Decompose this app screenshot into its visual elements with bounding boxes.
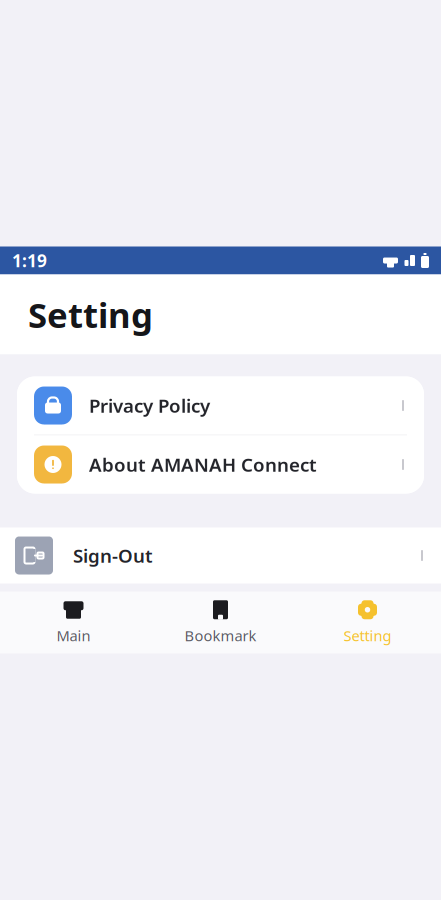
staticText: Setting xyxy=(343,626,391,645)
staticText: Privacy Policy xyxy=(89,393,210,418)
button[interactable]: Sign-Out xyxy=(0,527,441,583)
button[interactable]: Setting xyxy=(294,592,441,652)
button[interactable]: Privacy Policy xyxy=(17,376,424,434)
button[interactable]: About AMANAH Connect xyxy=(17,435,424,493)
staticText: 1:19 xyxy=(12,249,47,272)
staticText: Setting xyxy=(28,291,153,337)
button[interactable]: Bookmark xyxy=(147,592,294,652)
staticText: About AMANAH Connect xyxy=(89,452,317,477)
staticText: Sign-Out xyxy=(73,543,153,568)
button[interactable]: Main xyxy=(0,592,147,652)
staticText: Main xyxy=(56,626,90,645)
staticText: Bookmark xyxy=(184,626,256,645)
